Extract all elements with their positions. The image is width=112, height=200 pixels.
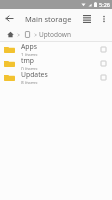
staticText: Updates — [21, 70, 48, 79]
staticText: 5:26 — [99, 1, 110, 8]
button[interactable]: More options — [96, 11, 112, 27]
button[interactable]: Apps — [0, 42, 112, 56]
staticText: Uptodown — [39, 30, 71, 39]
button[interactable]: Select Updates — [98, 72, 109, 83]
staticText: Apps — [21, 42, 37, 51]
button[interactable]: Switch view — [78, 10, 96, 28]
staticText: 0 items — [21, 66, 38, 70]
staticText: 1 items — [21, 52, 38, 56]
button[interactable]: Navigate up — [0, 9, 19, 28]
button[interactable]: tmp — [0, 56, 112, 70]
button[interactable]: Updates — [0, 70, 112, 84]
button[interactable]: Select Apps — [98, 44, 109, 55]
button[interactable]: Uptodown — [39, 30, 71, 39]
staticText: 8 items — [21, 80, 38, 84]
staticText: tmp — [21, 56, 34, 65]
button[interactable]: Device storage — [22, 29, 33, 40]
staticText: Main storage — [25, 14, 78, 24]
button[interactable]: Home — [5, 29, 16, 40]
button[interactable]: Select tmp — [98, 58, 109, 69]
